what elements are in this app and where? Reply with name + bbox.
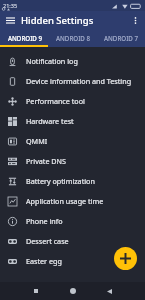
- staticText: Performance tool: [26, 96, 85, 106]
- button[interactable]: Recents: [30, 285, 42, 297]
- button[interactable]: Notification log: [0, 51, 145, 71]
- staticText: Battery optimization: [26, 176, 95, 186]
- staticText: 21:35: [3, 2, 18, 9]
- button[interactable]: Back: [103, 285, 115, 297]
- staticText: Notification log: [26, 56, 78, 66]
- button[interactable]: Dessert case: [0, 231, 145, 251]
- button[interactable]: More options: [129, 14, 142, 27]
- button[interactable]: QMMI: [0, 131, 145, 151]
- button[interactable]: Private DNS: [0, 151, 145, 171]
- button[interactable]: Easter egg: [0, 251, 145, 271]
- button[interactable]: Hardware test: [0, 111, 145, 131]
- staticText: Private DNS: [26, 156, 67, 166]
- button[interactable]: ANDROID 7: [97, 30, 145, 45]
- button[interactable]: Open navigation menu: [4, 14, 17, 27]
- staticText: QMMI: [26, 136, 48, 146]
- staticText: Phone info: [26, 216, 63, 226]
- staticText: ANDROID 8: [56, 34, 90, 42]
- staticText: Hardware test: [26, 116, 74, 126]
- button[interactable]: Device information and Testing: [0, 71, 145, 91]
- button[interactable]: Add: [114, 247, 137, 270]
- button[interactable]: Performance tool: [0, 91, 145, 111]
- staticText: Application usage time: [26, 196, 104, 206]
- button[interactable]: Home: [67, 285, 79, 297]
- staticText: Device information and Testing: [26, 76, 132, 86]
- staticText: ANDROID 7: [104, 34, 138, 42]
- button[interactable]: ANDROID 8: [49, 30, 97, 45]
- button[interactable]: Battery optimization: [0, 171, 145, 191]
- button[interactable]: Application usage time: [0, 191, 145, 211]
- button[interactable]: Phone info: [0, 211, 145, 231]
- staticText: ANDROID 9: [8, 34, 42, 42]
- staticText: Dessert case: [26, 236, 69, 246]
- button[interactable]: ANDROID 9: [0, 30, 49, 45]
- staticText: Hidden Settings: [21, 14, 94, 27]
- staticText: Easter egg: [26, 256, 62, 266]
